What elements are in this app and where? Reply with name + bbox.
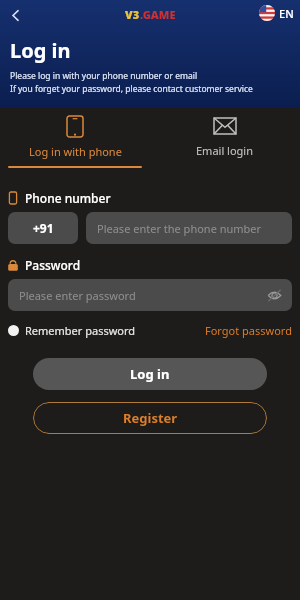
staticText: Password (25, 257, 81, 273)
staticText: If you forget your password, please cont… (10, 83, 253, 95)
staticText: Log in (10, 37, 71, 64)
staticText: Please log in with your phone number or … (10, 70, 198, 82)
staticText: Email login (196, 143, 254, 158)
button[interactable]: Back (3, 3, 27, 27)
staticText: Remember password (25, 323, 136, 338)
staticText: Please enter password (19, 288, 136, 303)
button[interactable]: Show password (264, 285, 284, 305)
button[interactable]: Email login (150, 108, 300, 178)
staticText: +91 (33, 220, 54, 236)
button[interactable]: EN (259, 5, 294, 21)
staticText: Please enter the phone number (97, 221, 262, 236)
button[interactable]: Remember password (8, 323, 136, 338)
button[interactable]: Log in (33, 358, 267, 390)
staticText: Log in (130, 365, 170, 383)
staticText: Register (123, 409, 178, 427)
button[interactable]: Register (33, 402, 267, 434)
staticText: Log in with phone (29, 144, 122, 159)
button[interactable]: +91 (8, 212, 78, 244)
button[interactable]: Please enter password (8, 279, 292, 311)
button[interactable]: Forgot password (205, 323, 292, 338)
staticText: Phone number (25, 190, 111, 206)
staticText: Forgot password (205, 323, 292, 338)
button[interactable]: Please enter the phone number (86, 212, 292, 244)
staticText: V3 (125, 7, 140, 22)
staticText: EN (279, 6, 294, 21)
button[interactable]: Log in with phone (0, 108, 150, 178)
staticText: .GAME (140, 7, 176, 22)
